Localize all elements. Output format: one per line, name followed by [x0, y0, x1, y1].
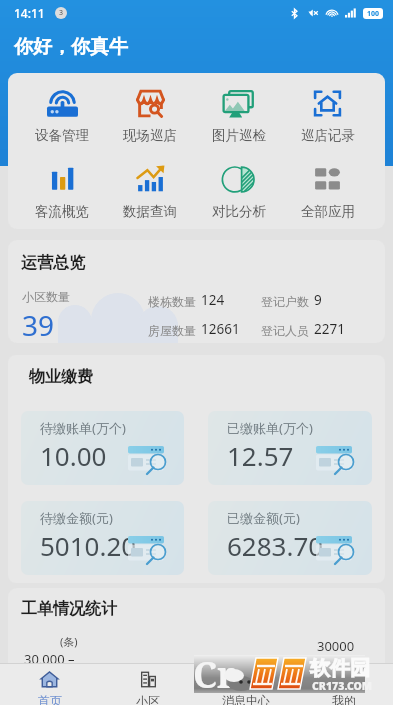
- staticText: 运营总览: [21, 253, 85, 273]
- staticText: Cr: [193, 650, 236, 688]
- staticText: 客流概览: [35, 203, 89, 220]
- button[interactable]: 首页: [0, 664, 99, 705]
- staticText: 小区: [136, 693, 160, 705]
- staticText: 已缴金额(元): [227, 509, 300, 527]
- staticText: 登记户数: [261, 294, 309, 309]
- staticText: 待缴金额(元): [40, 509, 113, 527]
- staticText: 消息中心: [222, 693, 270, 705]
- button[interactable]: 待缴账单(万个): [21, 411, 184, 485]
- button[interactable]: 已缴金额(元): [208, 501, 372, 575]
- button[interactable]: 设备管理: [18, 88, 106, 144]
- staticText: 39: [22, 306, 55, 343]
- staticText: 9: [314, 291, 322, 309]
- button[interactable]: 对比分析: [194, 164, 283, 220]
- staticText: 12.57: [227, 438, 294, 473]
- staticText: CR173.COM: [312, 679, 373, 693]
- staticText: 5010.20: [40, 528, 137, 563]
- staticText: 工单情况统计: [21, 599, 117, 619]
- staticText: 已缴账单(万个): [227, 419, 313, 437]
- button[interactable]: 运营总览: [8, 240, 385, 343]
- button[interactable]: 小区: [99, 664, 197, 705]
- staticText: 软件园: [310, 656, 370, 681]
- button[interactable]: 巡店记录: [283, 88, 372, 144]
- staticText: 12661: [201, 320, 240, 338]
- staticText: 30000: [317, 637, 355, 655]
- button[interactable]: 数据查询: [106, 164, 194, 220]
- staticText: 全部应用: [301, 203, 355, 220]
- staticText: 2271: [314, 320, 345, 338]
- staticText: 设备管理: [35, 127, 89, 144]
- staticText: 14:11: [14, 5, 45, 21]
- staticText: 房屋数量: [148, 323, 196, 338]
- button[interactable]: 待缴金额(元): [21, 501, 184, 575]
- button[interactable]: 现场巡店: [106, 88, 194, 144]
- staticText: 我的: [332, 693, 356, 705]
- button[interactable]: 客流概览: [18, 164, 106, 220]
- staticText: 30,000 –: [24, 650, 75, 668]
- staticText: 楼栋数量: [148, 294, 196, 309]
- staticText: 你好，你真牛: [14, 35, 128, 59]
- button[interactable]: 全部应用: [283, 164, 372, 220]
- staticText: 6283.70: [227, 528, 324, 563]
- staticText: 图片巡检: [212, 127, 266, 144]
- staticText: 124: [201, 291, 225, 309]
- button[interactable]: 消息中心: [197, 664, 295, 705]
- button[interactable]: 已缴账单(万个): [208, 411, 372, 485]
- staticText: (条): [60, 634, 78, 649]
- staticText: 3: [59, 8, 64, 18]
- staticText: 对比分析: [212, 203, 266, 220]
- staticText: 物业缴费: [29, 367, 93, 387]
- staticText: 登记人员: [261, 323, 309, 338]
- button[interactable]: 图片巡检: [194, 88, 283, 144]
- staticText: 小区数量: [22, 289, 70, 304]
- staticText: 现场巡店: [123, 127, 177, 144]
- staticText: 数据查询: [123, 203, 177, 220]
- staticText: 100: [367, 9, 380, 19]
- button[interactable]: 我的: [295, 664, 393, 705]
- staticText: 10.00: [40, 438, 107, 473]
- staticText: 待缴账单(万个): [40, 419, 126, 437]
- staticText: 巡店记录: [301, 127, 355, 144]
- staticText: 首页: [38, 693, 62, 705]
